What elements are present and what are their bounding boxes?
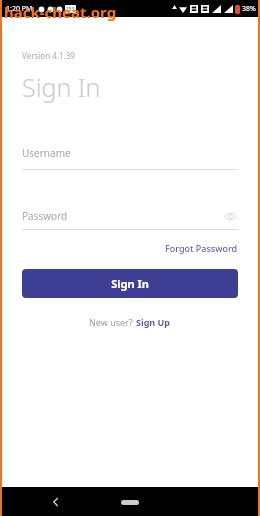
button[interactable]: Password bbox=[22, 208, 238, 230]
staticText: 38% bbox=[242, 4, 256, 14]
button[interactable]: Home bbox=[112, 494, 148, 510]
staticText: Sign In bbox=[111, 276, 149, 291]
button[interactable]: Back bbox=[46, 492, 66, 512]
staticText: New user? bbox=[89, 316, 136, 328]
button[interactable]: Username bbox=[22, 146, 238, 170]
staticText: hack-cheat.org bbox=[4, 2, 117, 22]
staticText: 1:20 PM bbox=[6, 4, 33, 14]
staticText: Forgot Password bbox=[165, 242, 238, 254]
staticText: Sign In bbox=[22, 70, 101, 104]
staticText: 153 bbox=[66, 6, 75, 13]
staticText: Password bbox=[22, 209, 222, 223]
staticText: Username bbox=[22, 146, 71, 160]
staticText: Sign Up bbox=[136, 316, 171, 328]
button[interactable]: Forgot Password bbox=[165, 240, 238, 256]
button[interactable]: Show password bbox=[222, 208, 238, 224]
button[interactable]: Sign Up bbox=[136, 316, 171, 328]
staticText: Version 4.1.39 bbox=[22, 50, 75, 61]
button[interactable]: Sign In bbox=[22, 269, 238, 298]
